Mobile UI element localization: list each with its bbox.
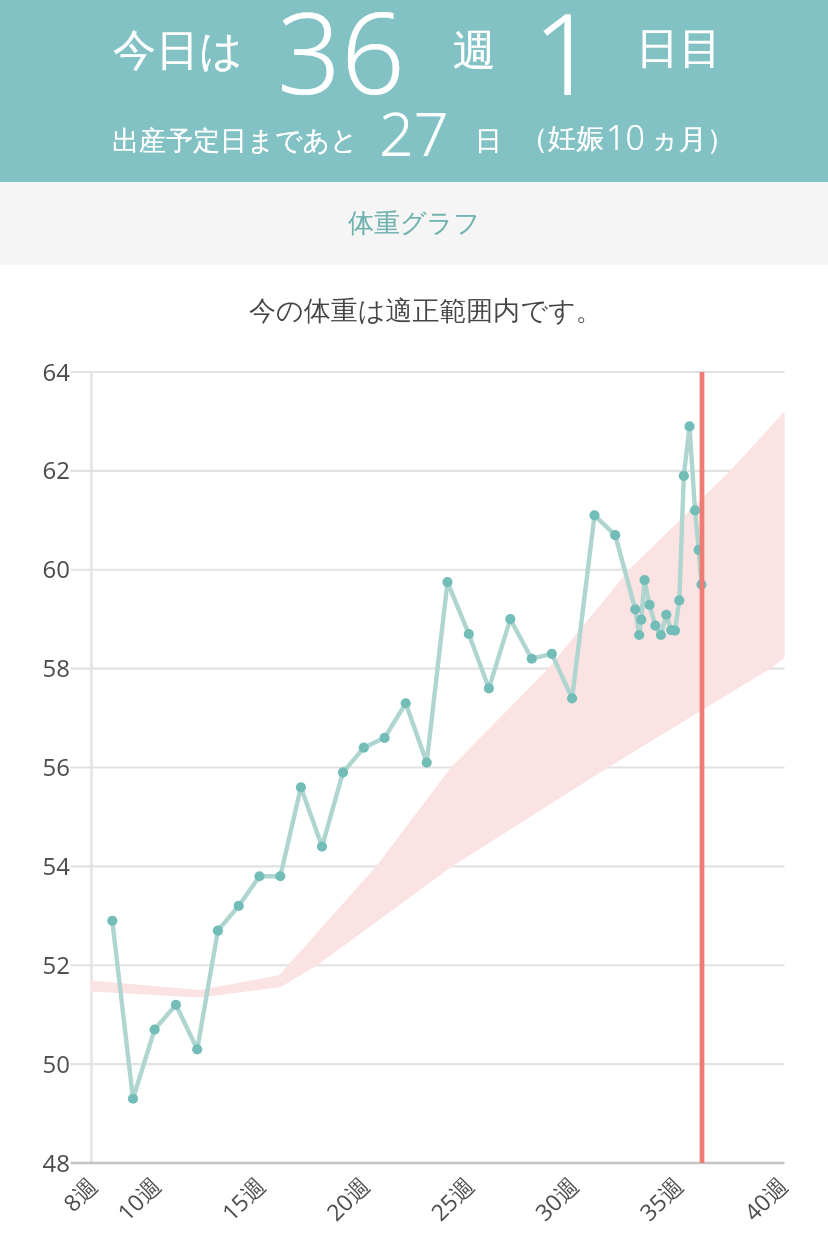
staticText: 36 xyxy=(277,0,405,127)
staticText: 出産予定日まであと xyxy=(112,124,358,158)
staticText: （妊娠 xyxy=(520,121,604,156)
staticText: 1 xyxy=(533,0,597,128)
staticText: 日目 xyxy=(636,22,722,76)
button[interactable]: 体重グラフ xyxy=(0,182,828,265)
staticText: 週 xyxy=(453,24,496,78)
staticText: 10 xyxy=(606,114,645,160)
staticText: 今の体重は適正範囲内です。 xyxy=(249,294,603,328)
staticText: 体重グラフ xyxy=(348,207,480,240)
staticText: 今日は xyxy=(113,24,244,78)
staticText: 27 xyxy=(379,91,449,174)
staticText: 日 xyxy=(475,124,502,158)
staticText: ヵ月） xyxy=(650,122,735,157)
